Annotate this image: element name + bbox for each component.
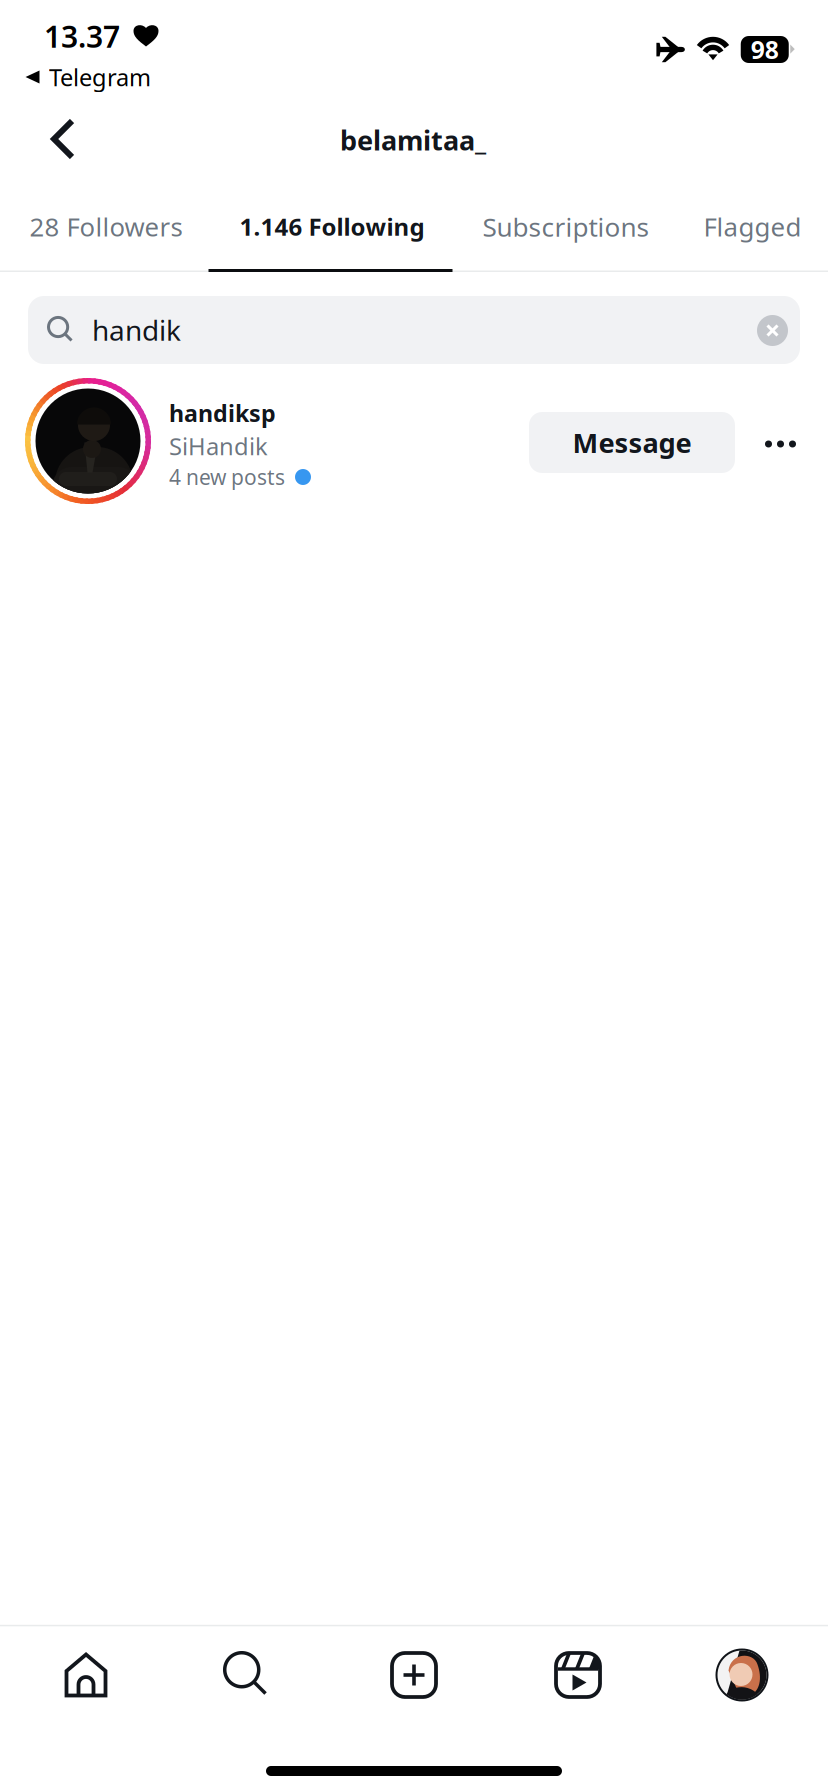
button[interactable]: handik	[0, 0, 828, 1792]
staticText: 28 Followers	[29, 209, 182, 244]
staticText: 4 new posts	[169, 463, 285, 491]
button[interactable]: 28 Followers	[0, 0, 828, 1792]
button[interactable]: Search	[0, 0, 828, 1792]
staticText: 13.37	[44, 16, 120, 56]
button[interactable]: Create	[0, 0, 828, 1792]
staticText: Message	[572, 424, 691, 461]
staticText: Telegram	[49, 61, 151, 93]
staticText: SiHandik	[169, 430, 268, 462]
button[interactable]: Home	[0, 0, 828, 1792]
button[interactable]: Clear search	[0, 0, 828, 1792]
staticText: 1.146 Following	[239, 210, 424, 243]
button[interactable]: Subscriptions	[0, 0, 828, 1792]
button[interactable]: More options	[0, 0, 828, 1792]
staticText: handiksp	[169, 397, 276, 429]
staticText: Subscriptions	[482, 209, 649, 244]
staticText: Flagged	[703, 209, 801, 244]
button[interactable]: Back	[0, 0, 828, 1792]
staticText: handik	[92, 311, 181, 349]
staticText: belamitaa_	[340, 122, 486, 158]
button[interactable]: Telegram	[0, 0, 828, 1792]
button[interactable]: Message	[0, 0, 828, 1792]
staticText: 98	[751, 33, 779, 66]
button[interactable]: Reels	[0, 0, 828, 1792]
button[interactable]: Profile	[0, 0, 828, 1792]
button[interactable]: 1.146 Following	[0, 0, 828, 1792]
button[interactable]: Flagged	[0, 0, 828, 1792]
